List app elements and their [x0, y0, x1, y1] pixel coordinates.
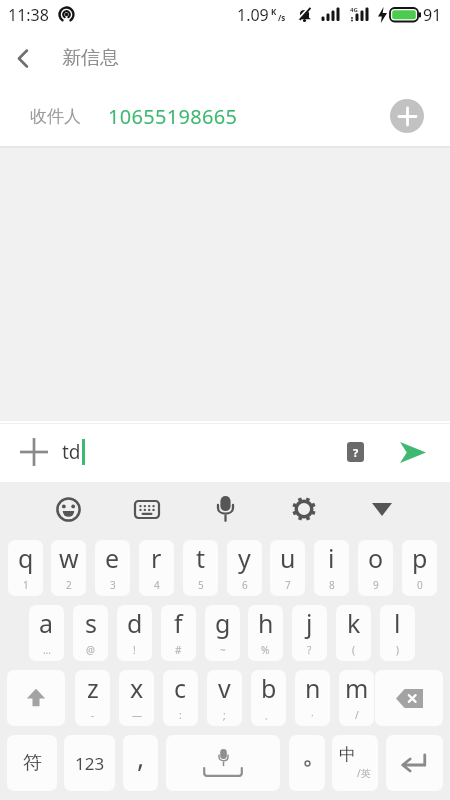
- staticText: 9: [373, 578, 379, 592]
- button[interactable]: 中: [332, 735, 378, 791]
- staticText: r: [151, 541, 162, 575]
- staticText: ~: [220, 643, 226, 657]
- staticText: t: [196, 541, 206, 575]
- button[interactable]: h: [248, 605, 283, 661]
- staticText: td: [62, 439, 81, 465]
- button[interactable]: [119, 487, 175, 531]
- staticText: p: [412, 541, 428, 575]
- button[interactable]: td: [62, 426, 330, 478]
- button[interactable]: j: [292, 605, 327, 661]
- staticText: 6: [242, 578, 248, 592]
- button[interactable]: ?: [347, 442, 364, 462]
- staticText: b: [261, 671, 277, 705]
- staticText: !: [133, 643, 136, 657]
- button[interactable]: [197, 487, 253, 531]
- button[interactable]: c: [163, 670, 198, 726]
- staticText: v: [218, 671, 231, 705]
- staticText: e: [105, 541, 120, 575]
- staticText: 5: [198, 578, 204, 592]
- staticText: w: [59, 541, 79, 575]
- button[interactable]: u: [270, 540, 305, 596]
- button[interactable]: z: [75, 670, 110, 726]
- button[interactable]: [386, 735, 443, 791]
- staticText: ·: [311, 708, 314, 722]
- button[interactable]: [289, 735, 325, 791]
- button[interactable]: d: [117, 605, 152, 661]
- staticText: 3: [110, 578, 116, 592]
- staticText: ): [396, 643, 399, 657]
- button[interactable]: n: [295, 670, 330, 726]
- staticText: s: [85, 606, 97, 640]
- staticText: 0: [417, 578, 423, 592]
- button[interactable]: [390, 99, 424, 133]
- button[interactable]: p: [402, 540, 437, 596]
- button[interactable]: [0, 30, 46, 86]
- button[interactable]: y: [227, 540, 262, 596]
- staticText: m: [345, 671, 369, 705]
- staticText: z: [87, 671, 99, 705]
- staticText: /英: [357, 766, 371, 780]
- staticText: ?: [353, 445, 359, 460]
- button[interactable]: r: [139, 540, 174, 596]
- staticText: %: [261, 643, 270, 657]
- button[interactable]: [166, 735, 280, 791]
- button[interactable]: x: [119, 670, 154, 726]
- button[interactable]: [354, 487, 410, 531]
- button[interactable]: q: [8, 540, 43, 596]
- staticText: ,: [137, 738, 145, 775]
- button[interactable]: v: [207, 670, 242, 726]
- button[interactable]: ,: [123, 735, 158, 791]
- staticText: 123: [75, 752, 105, 775]
- staticText: 符: [23, 751, 42, 775]
- staticText: 中: [339, 744, 356, 765]
- button[interactable]: s: [73, 605, 108, 661]
- staticText: k: [347, 606, 361, 640]
- staticText: 91: [423, 4, 442, 26]
- staticText: (: [352, 643, 355, 657]
- staticText: 4G: [350, 6, 358, 14]
- staticText: i: [328, 541, 335, 575]
- staticText: d: [127, 606, 143, 640]
- staticText: f: [174, 606, 183, 640]
- staticText: 4: [154, 578, 160, 592]
- staticText: x: [130, 671, 144, 705]
- button[interactable]: [375, 670, 443, 726]
- staticText: 1.09: [237, 4, 269, 26]
- staticText: ;: [223, 708, 226, 722]
- staticText: y: [238, 541, 251, 575]
- staticText: K: [271, 6, 277, 17]
- staticText: #: [175, 643, 182, 657]
- staticText: 7: [285, 578, 291, 592]
- button[interactable]: g: [205, 605, 240, 661]
- button[interactable]: 123: [64, 735, 115, 791]
- staticText: /: [355, 708, 359, 722]
- staticText: 8: [329, 578, 335, 592]
- staticText: u: [280, 541, 296, 575]
- staticText: …: [43, 643, 51, 657]
- button[interactable]: 符: [7, 735, 57, 791]
- button[interactable]: [276, 487, 332, 531]
- button[interactable]: t: [183, 540, 218, 596]
- button[interactable]: k: [336, 605, 371, 661]
- staticText: 1: [23, 578, 29, 592]
- button[interactable]: l: [380, 605, 415, 661]
- button[interactable]: w: [51, 540, 86, 596]
- button[interactable]: o: [358, 540, 393, 596]
- button[interactable]: [7, 670, 65, 726]
- button[interactable]: [396, 435, 430, 469]
- staticText: a: [39, 606, 54, 640]
- staticText: h: [258, 606, 274, 640]
- button[interactable]: [17, 435, 51, 469]
- button[interactable]: e: [95, 540, 130, 596]
- button[interactable]: a: [29, 605, 64, 661]
- staticText: @: [86, 643, 95, 657]
- staticText: q: [18, 541, 34, 575]
- staticText: /s: [278, 12, 286, 23]
- button[interactable]: [40, 487, 96, 531]
- staticText: o: [368, 541, 384, 575]
- button[interactable]: m: [339, 670, 374, 726]
- button[interactable]: i: [314, 540, 349, 596]
- staticText: 新信息: [62, 46, 119, 70]
- button[interactable]: b: [251, 670, 286, 726]
- button[interactable]: f: [161, 605, 196, 661]
